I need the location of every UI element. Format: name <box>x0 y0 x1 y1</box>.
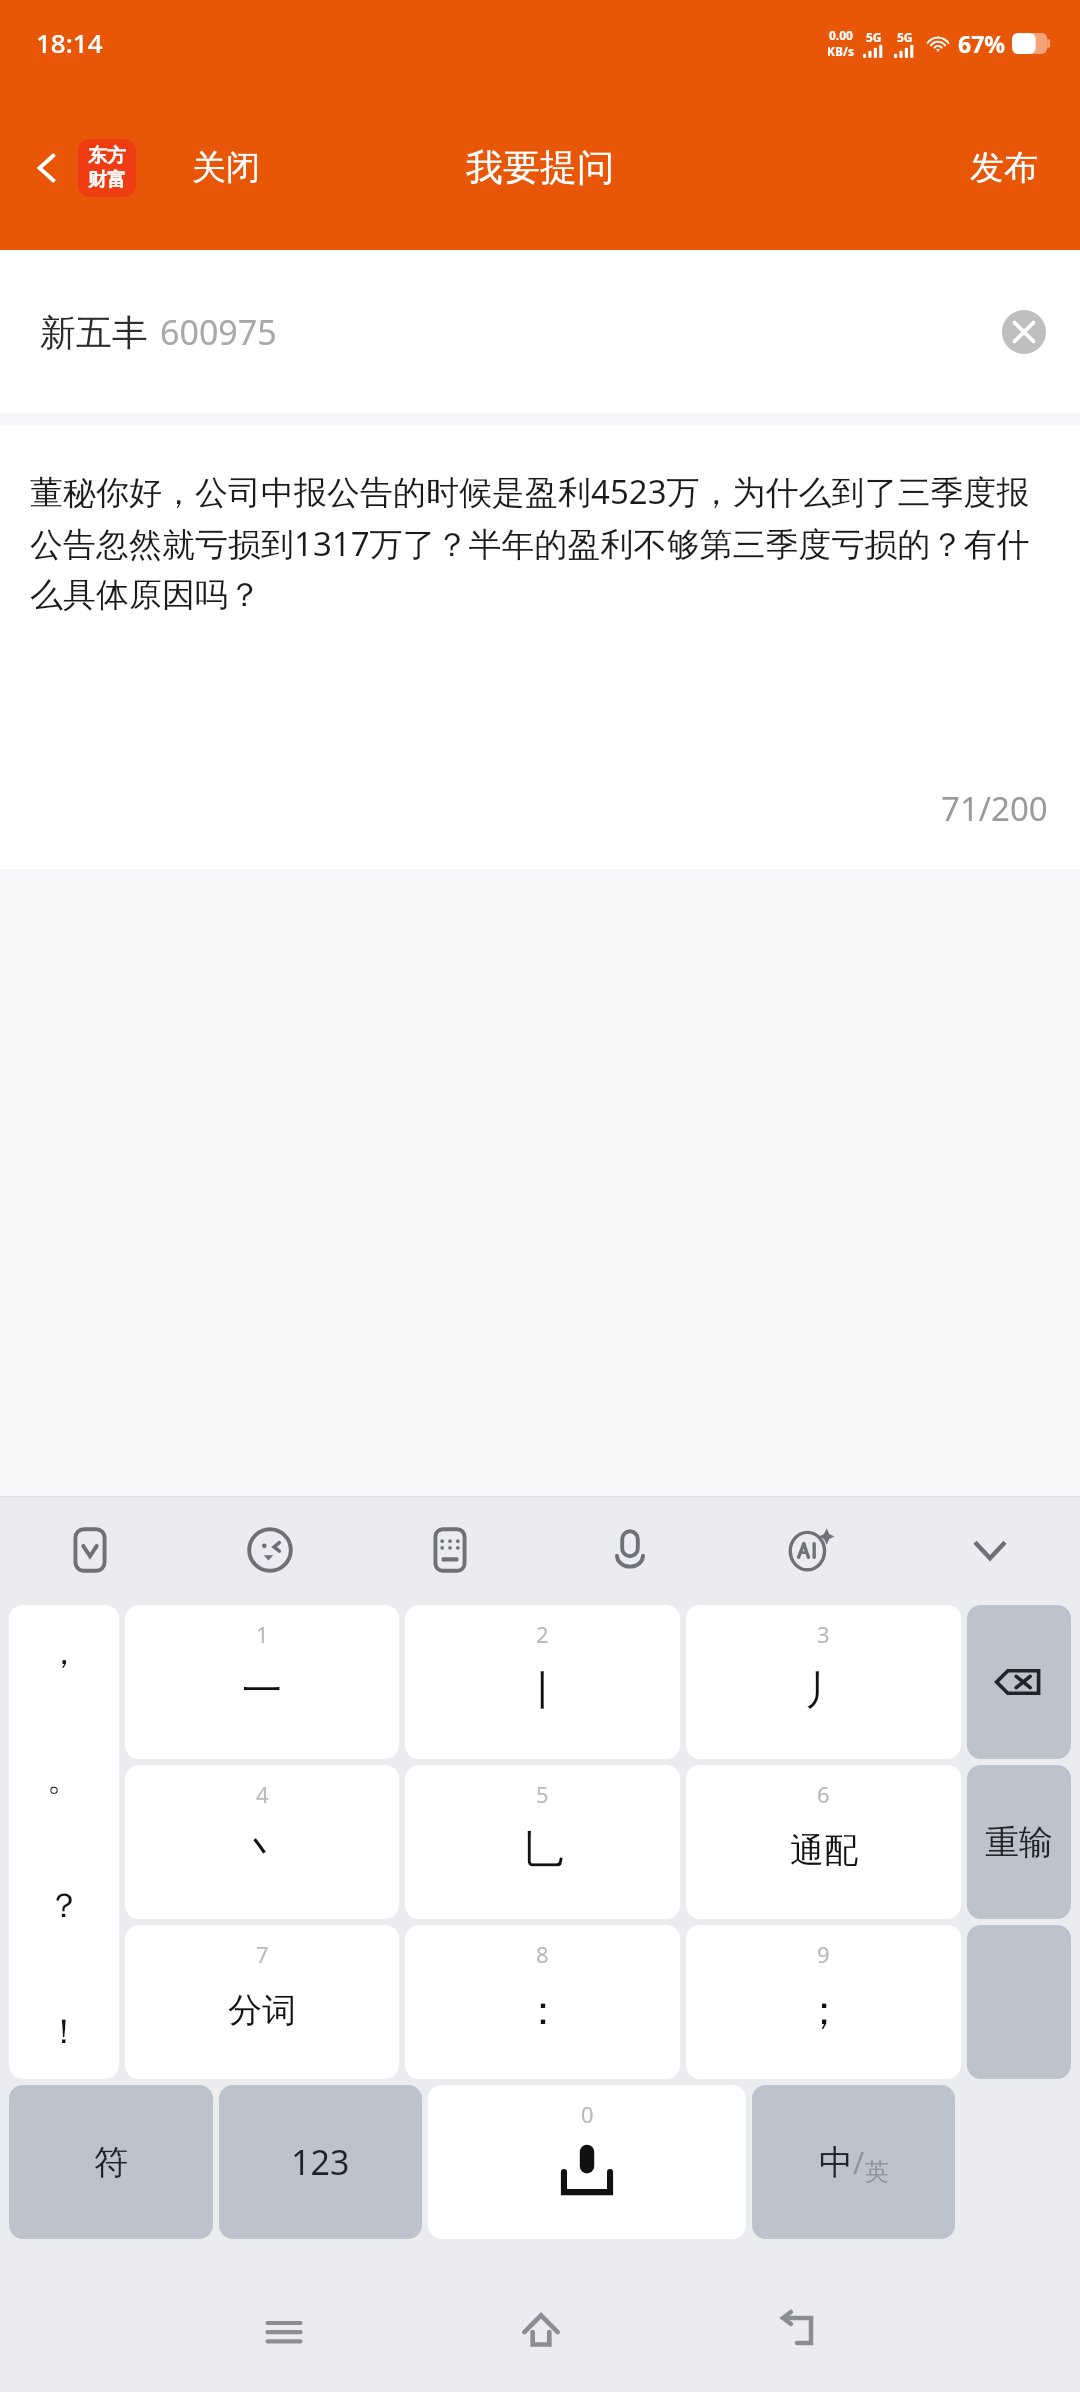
staticText: 18:14 <box>36 25 103 60</box>
staticText: 6 <box>817 1779 830 1809</box>
staticText: ！ <box>47 2010 81 2053</box>
button[interactable]: Clear <box>994 302 1054 362</box>
staticText: 丶 <box>242 1825 282 1875</box>
button[interactable]: Back <box>18 127 148 209</box>
button[interactable]: Space / voice <box>428 2085 746 2239</box>
staticText: 0 <box>581 2099 594 2129</box>
button[interactable]: Language <box>0 1497 180 1602</box>
staticText: 通配 <box>790 1829 858 1872</box>
staticText: 东方 <box>88 144 126 168</box>
button[interactable]: 关闭 <box>182 132 270 203</box>
staticText: 4 <box>256 1779 269 1809</box>
staticText: 600975 <box>160 309 277 355</box>
staticText: 8 <box>536 1939 549 1969</box>
staticText: / <box>853 2142 865 2183</box>
button[interactable]: Keyboard layout <box>360 1497 540 1602</box>
staticText: 英 <box>865 2157 889 2187</box>
staticText: 一 <box>242 1665 282 1715</box>
button[interactable]: Recent apps <box>155 2270 412 2392</box>
staticText: 67% <box>958 28 1006 59</box>
staticText: ， <box>47 1631 81 1674</box>
staticText: 中 <box>819 2141 853 2184</box>
staticText: 2 <box>536 1619 549 1649</box>
staticText: 5G <box>866 29 882 45</box>
staticText: 123 <box>291 2139 350 2185</box>
staticText: 重输 <box>985 1821 1053 1864</box>
button[interactable]: 7 <box>125 1925 399 2079</box>
button[interactable]: 1 <box>125 1605 399 1759</box>
button[interactable]: 6 <box>686 1765 961 1919</box>
staticText: 。 <box>47 1757 81 1800</box>
button[interactable]: enter <box>967 1925 1071 2079</box>
staticText: 9 <box>817 1939 830 1969</box>
staticText: 丨 <box>523 1665 563 1715</box>
button[interactable]: 重输 <box>967 1765 1071 1919</box>
button[interactable]: 2 <box>405 1605 680 1759</box>
button[interactable]: Home <box>412 2270 669 2392</box>
button[interactable]: 4 <box>125 1765 399 1919</box>
button[interactable]: 符 <box>9 2085 213 2239</box>
staticText: 我要提问 <box>466 144 614 191</box>
staticText: KB/s <box>827 43 854 59</box>
button[interactable]: 9 <box>686 1925 961 2079</box>
staticText: 3 <box>817 1619 830 1649</box>
staticText: ； <box>804 1985 844 2035</box>
button[interactable]: ， <box>9 1605 119 2079</box>
button[interactable]: 3 <box>686 1605 961 1759</box>
button[interactable]: 8 <box>405 1925 680 2079</box>
staticText: 0.00 <box>829 27 853 43</box>
staticText: 符 <box>94 2141 128 2184</box>
button[interactable]: Back <box>669 2270 926 2392</box>
staticText: ： <box>523 1985 563 2035</box>
button[interactable]: 发布 <box>960 132 1048 203</box>
staticText: 5 <box>536 1779 549 1809</box>
staticText: 分词 <box>228 1989 296 2032</box>
staticText: 7 <box>256 1939 269 1969</box>
staticText: 乚 <box>523 1825 563 1875</box>
staticText: 董秘你好，公司中报公告的时候是盈利4523万，为什么到了三季度报公告忽然就亏损到… <box>30 469 1054 616</box>
button[interactable]: Voice input <box>540 1497 720 1602</box>
staticText: ？ <box>47 1884 81 1927</box>
button[interactable]: Emoji <box>180 1497 360 1602</box>
staticText: 丿 <box>804 1665 844 1715</box>
button[interactable]: AI assistant <box>720 1497 900 1602</box>
staticText: 5G <box>897 29 913 45</box>
staticText: 新五丰 <box>40 310 148 355</box>
button[interactable]: backspace <box>967 1605 1071 1759</box>
staticText: 财富 <box>88 168 126 192</box>
button[interactable]: 中 <box>752 2085 955 2239</box>
button[interactable]: Hide keyboard <box>900 1497 1080 1602</box>
staticText: 71/200 <box>941 786 1048 831</box>
staticText: 1 <box>256 1619 269 1649</box>
button[interactable]: 123 <box>219 2085 422 2239</box>
button[interactable]: 5 <box>405 1765 680 1919</box>
